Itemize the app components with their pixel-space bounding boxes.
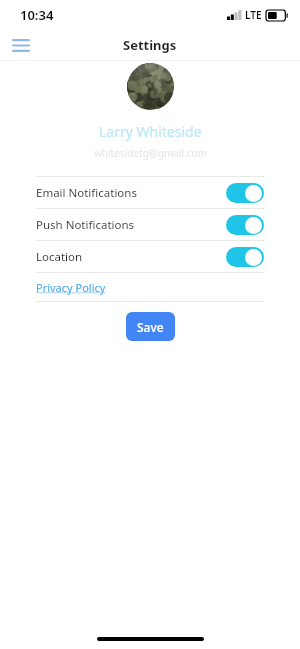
button[interactable]: Privacy Policy bbox=[36, 280, 106, 295]
staticText: Save bbox=[137, 319, 164, 335]
button[interactable]: Save bbox=[126, 312, 175, 341]
button[interactable]: Toggle bbox=[226, 183, 264, 203]
button[interactable]: Toggle bbox=[226, 215, 264, 235]
staticText: Privacy Policy bbox=[36, 280, 106, 295]
staticText: 10:34 bbox=[20, 6, 54, 24]
staticText: whitesidetg@gmail.com bbox=[94, 146, 207, 160]
staticText: Push Notifications bbox=[36, 217, 135, 233]
button[interactable]: Toggle bbox=[226, 247, 264, 267]
button[interactable]: Menu bbox=[6, 30, 36, 60]
staticText: Location bbox=[36, 249, 83, 265]
button[interactable]: Location bbox=[0, 241, 300, 272]
staticText: Settings bbox=[123, 36, 177, 54]
staticText: Email Notifications bbox=[36, 185, 137, 201]
staticText: LTE bbox=[245, 8, 262, 22]
button[interactable]: Push Notifications bbox=[0, 209, 300, 240]
staticText: Larry Whiteside bbox=[99, 122, 202, 141]
button[interactable]: Email Notifications bbox=[0, 177, 300, 208]
